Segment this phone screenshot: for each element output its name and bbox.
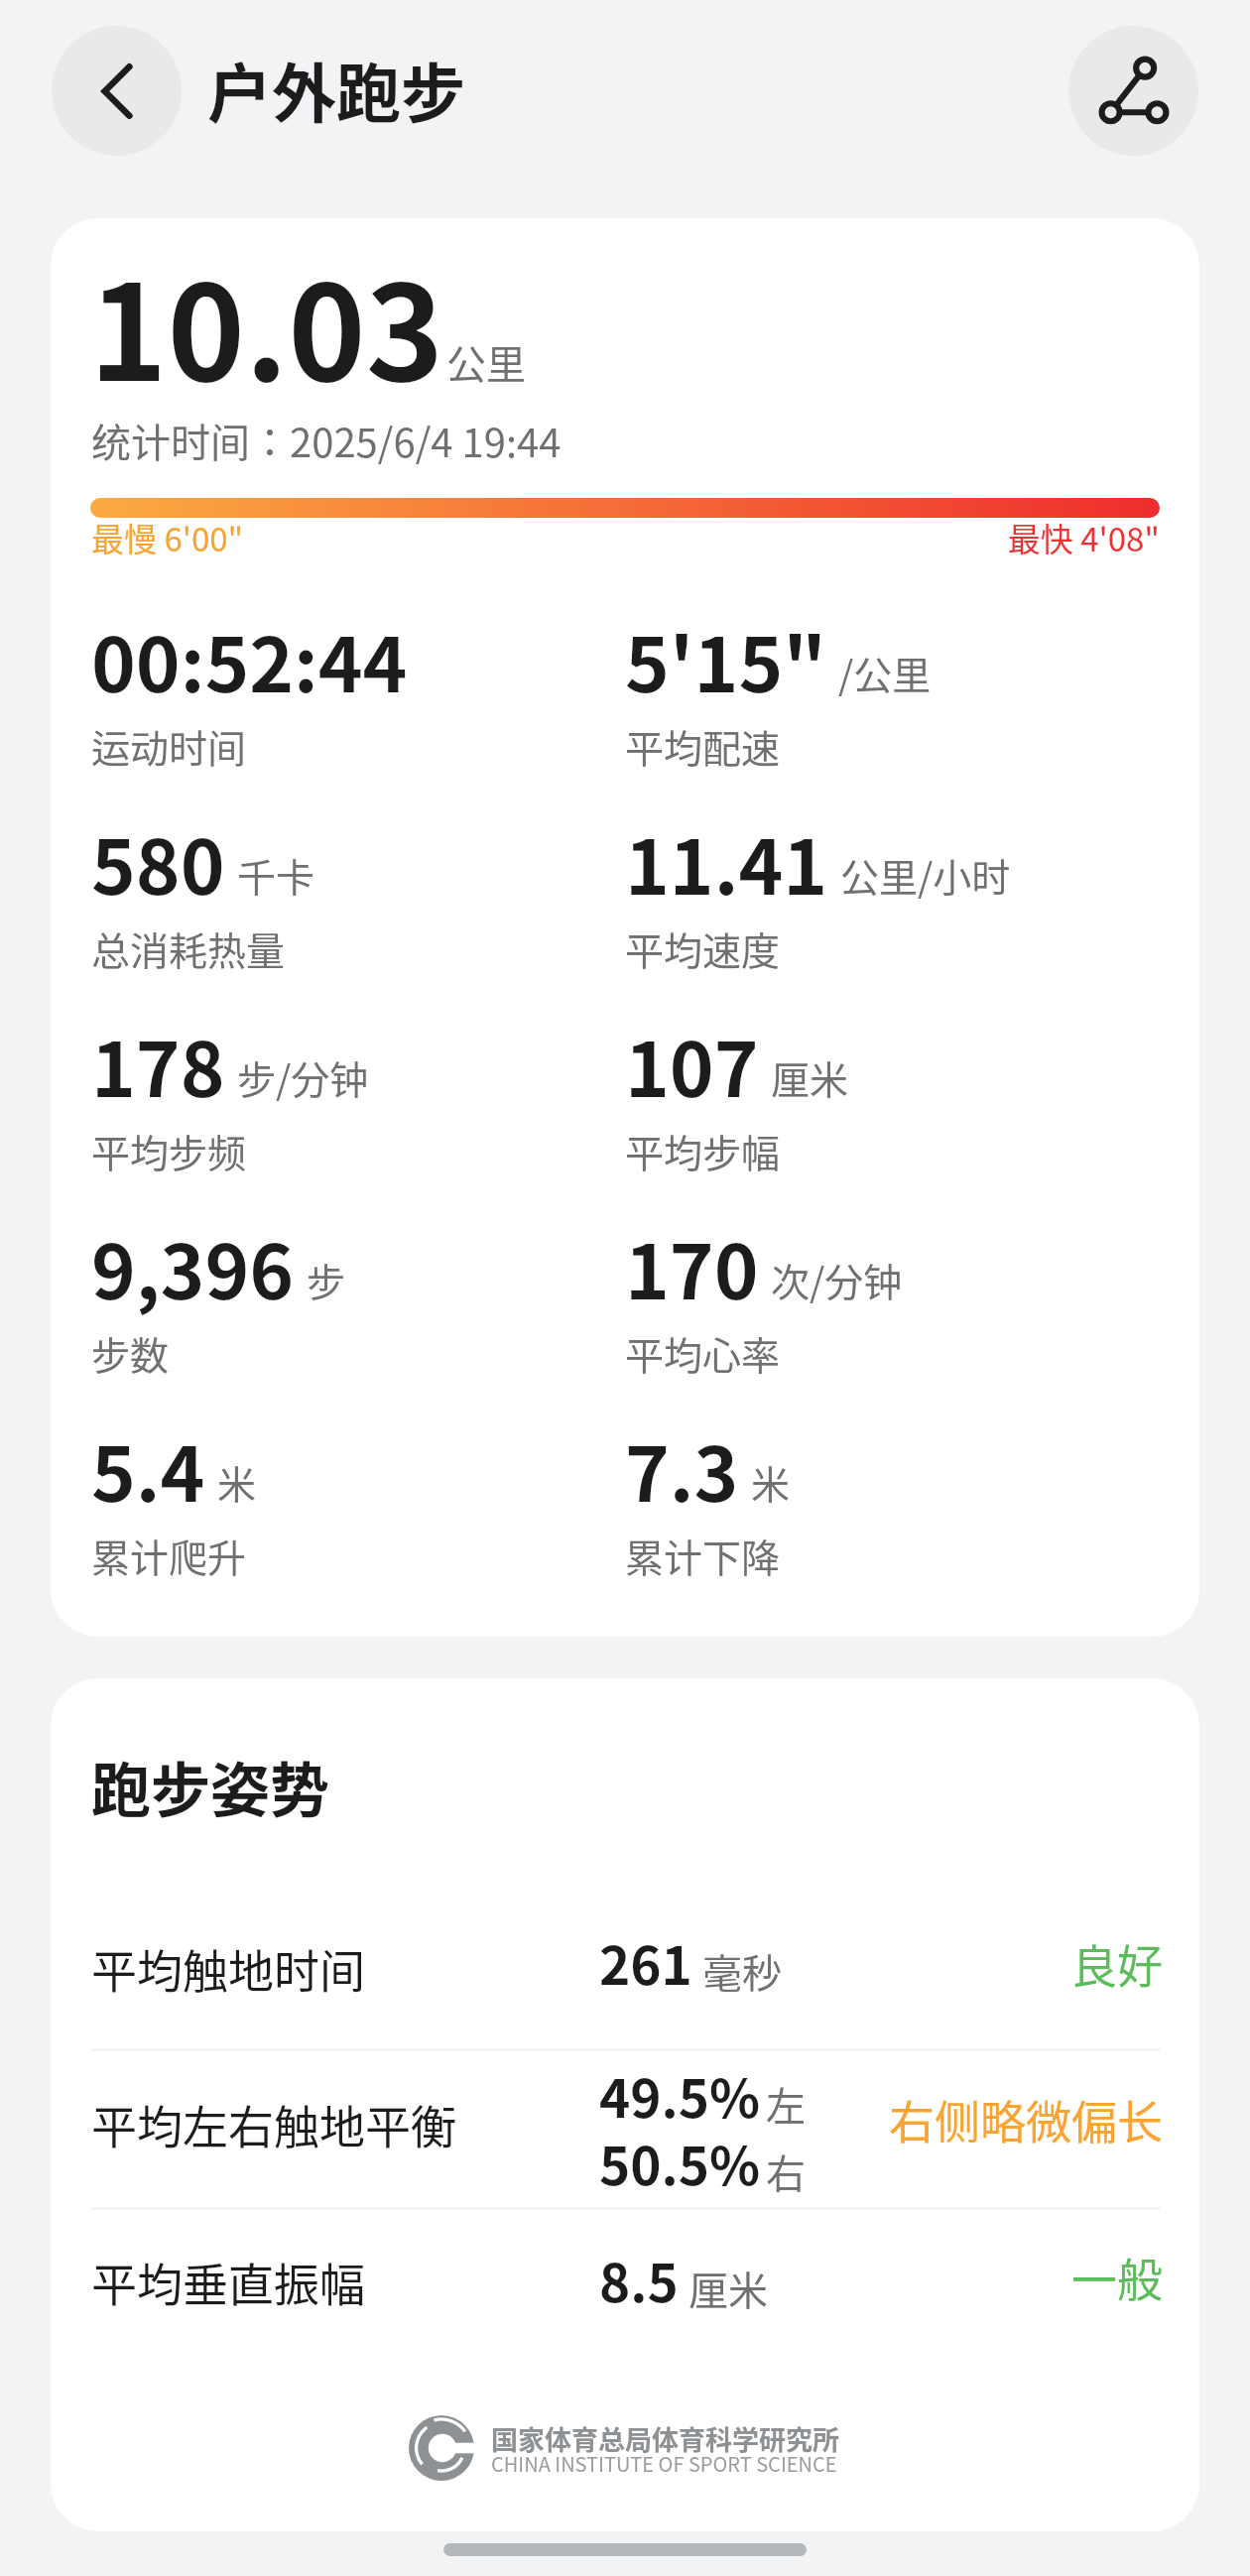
staticText: 一般 (754, 2244, 1163, 2310)
staticText: 最慢 6'00" (91, 514, 244, 561)
staticText: 8.5 (599, 2242, 679, 2318)
staticText: 580 (91, 807, 225, 917)
staticText: 7.3 (625, 1414, 739, 1524)
staticText: 49.5% (599, 2057, 761, 2134)
staticText: 步数 (91, 1325, 170, 1381)
staticText: 千卡 (237, 847, 315, 903)
staticText: 米 (751, 1454, 791, 1510)
button[interactable]: Back (52, 26, 182, 156)
staticText: 步 (307, 1252, 346, 1307)
staticText: 平均触地时间 (91, 1935, 365, 2002)
staticText: 右侧略微偏长 (754, 2086, 1163, 2152)
staticText: 平均垂直振幅 (91, 2249, 365, 2315)
staticText: 步/分钟 (237, 1049, 369, 1105)
staticText: 跑步姿势 (91, 1743, 329, 1829)
staticText: 11.41 (625, 807, 828, 917)
staticText: 10.03 (89, 228, 444, 420)
staticText: 厘米 (688, 2260, 768, 2317)
staticText: /公里 (838, 645, 932, 700)
staticText: 国家体育总局体育科学研究所 (491, 2419, 839, 2458)
button[interactable]: Share (1068, 26, 1198, 156)
staticText: 户外跑步 (207, 43, 466, 136)
staticText: 170 (625, 1212, 759, 1321)
staticText: 178 (91, 1010, 225, 1119)
staticText: 9,396 (91, 1212, 295, 1321)
staticText: 公里 (446, 333, 526, 391)
staticText: 261 (599, 1924, 692, 2001)
staticText: 5'15" (625, 605, 826, 714)
staticText: 右 (766, 2143, 806, 2200)
staticText: 107 (625, 1010, 759, 1119)
staticText: 平均配速 (625, 718, 781, 774)
staticText: 厘米 (771, 1049, 849, 1105)
staticText: CHINA INSTITUTE OF SPORT SCIENCE (491, 2449, 837, 2478)
staticText: 毫秒 (702, 1942, 782, 2000)
staticText: 5.4 (91, 1414, 205, 1524)
staticText: 平均步幅 (625, 1123, 781, 1178)
staticText: 左 (766, 2075, 806, 2133)
staticText: 运动时间 (91, 718, 247, 774)
staticText: 最快 4'08" (751, 514, 1160, 561)
staticText: 50.5% (599, 2125, 761, 2201)
staticText: 良好 (754, 1930, 1163, 1997)
staticText: 米 (217, 1454, 257, 1510)
staticText: 平均步频 (91, 1123, 247, 1178)
staticText: 统计时间：2025/6/4 19:44 (91, 412, 562, 469)
staticText: 平均速度 (625, 920, 781, 976)
staticText: 00:52:44 (91, 605, 408, 714)
staticText: 总消耗热量 (91, 920, 286, 976)
staticText: 累计爬升 (91, 1528, 247, 1583)
staticText: 平均心率 (625, 1325, 781, 1381)
staticText: 公里/小时 (840, 847, 1011, 903)
staticText: 次/分钟 (771, 1252, 903, 1307)
staticText: 累计下降 (625, 1528, 781, 1583)
staticText: 平均左右触地平衡 (91, 2091, 456, 2157)
